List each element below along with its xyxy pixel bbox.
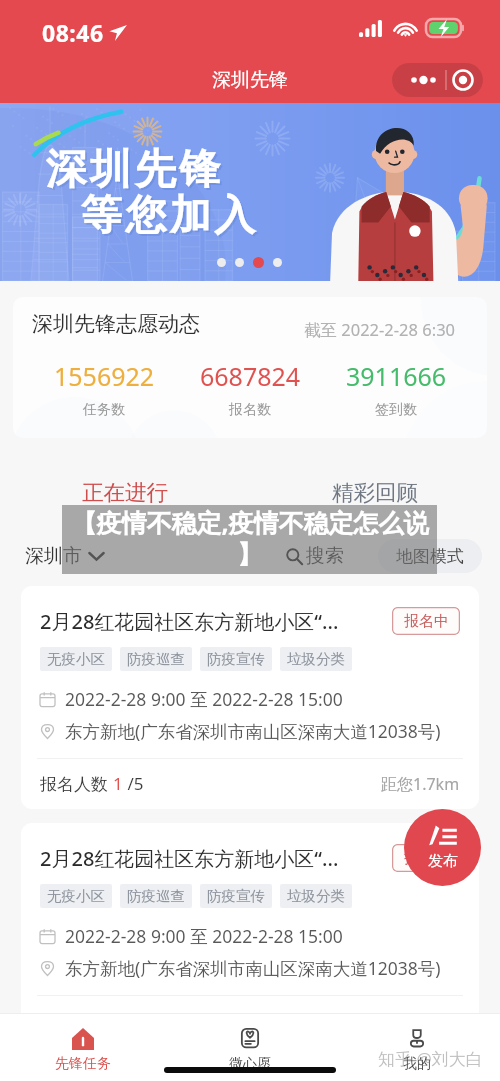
staticText: 等您加入: [79, 190, 257, 242]
staticText: 无疫小区: [47, 887, 105, 905]
staticText: 报名人数: [40, 1009, 113, 1032]
staticText: 知乎 @刘大白: [378, 1047, 483, 1070]
staticText: 2022-2-28 9:00 至 2022-2-28 15:00: [65, 924, 343, 948]
staticText: 深圳先锋: [212, 68, 288, 92]
button[interactable]: 正在进行: [0, 475, 250, 509]
staticText: 6687824: [200, 359, 301, 393]
staticText: 等您加入: [81, 192, 259, 244]
staticText: 防疫巡查: [127, 887, 185, 905]
staticText: 发布: [428, 852, 458, 871]
staticText: 】: [237, 539, 262, 570]
staticText: 深圳先锋: [44, 144, 222, 196]
staticText: 【疫情不稳定,疫情不稳定怎么说: [71, 505, 429, 539]
staticText: 深圳先锋: [46, 146, 224, 198]
staticText: 距您1.7km: [381, 773, 460, 795]
staticText: 报名人数: [40, 772, 113, 795]
staticText: 报名中: [404, 612, 449, 631]
staticText: 截至 2022-2-28 6:30: [304, 318, 456, 341]
button[interactable]: 先锋任务: [43, 1013, 123, 1081]
button[interactable]: 地图模式: [378, 539, 482, 573]
staticText: 东方新地(广东省深圳市南山区深南大道12038号): [65, 956, 441, 980]
button[interactable]: 精彩回顾: [250, 475, 500, 509]
staticText: 东方新地(广东省深圳市南山区深南大道12038号): [65, 719, 441, 743]
staticText: 垃圾分类: [287, 650, 345, 668]
staticText: 搜索: [306, 544, 344, 568]
staticText: 深圳先锋志愿动态: [32, 311, 200, 337]
staticText: 无疫小区: [47, 650, 105, 668]
button[interactable]: 深圳市: [25, 544, 105, 568]
staticText: 1: [113, 772, 123, 795]
staticText: 报名中: [404, 849, 449, 868]
staticText: 报名数: [229, 401, 271, 419]
staticText: 防疫宣传: [207, 887, 265, 905]
button[interactable]: 2月28红花园社区东方新地小区“...: [21, 823, 479, 1046]
staticText: 先锋任务: [55, 1055, 111, 1073]
button[interactable]: 发布: [404, 809, 481, 886]
staticText: 3911666: [346, 359, 447, 393]
staticText: 地图模式: [396, 546, 464, 567]
staticText: /5: [123, 772, 144, 795]
staticText: 签到数: [375, 401, 417, 419]
button[interactable]: More options: [392, 63, 483, 97]
button[interactable]: 深圳先锋志愿动态: [13, 297, 487, 438]
button[interactable]: 我的: [377, 1013, 457, 1081]
staticText: 我的: [403, 1055, 431, 1073]
button[interactable]: 搜索: [286, 544, 344, 568]
staticText: 2月28红花园社区东方新地小区“...: [40, 608, 384, 635]
staticText: 微心愿: [229, 1055, 271, 1073]
staticText: 任务数: [83, 401, 125, 419]
button[interactable]: 微心愿: [210, 1013, 290, 1081]
staticText: 垃圾分类: [287, 887, 345, 905]
button[interactable]: 2月28红花园社区东方新地小区“...: [21, 586, 479, 809]
staticText: 精彩回顾: [332, 479, 418, 506]
staticText: 距您1.7km: [381, 1010, 460, 1032]
staticText: 1: [113, 1009, 123, 1032]
staticText: 08:46: [42, 17, 104, 48]
staticText: 1556922: [54, 359, 155, 393]
staticText: 2月28红花园社区东方新地小区“...: [40, 845, 384, 872]
staticText: 防疫宣传: [207, 650, 265, 668]
staticText: 深圳市: [25, 544, 82, 568]
staticText: 正在进行: [82, 479, 168, 506]
staticText: /5: [123, 1009, 144, 1032]
staticText: 防疫巡查: [127, 650, 185, 668]
staticText: 2022-2-28 9:00 至 2022-2-28 15:00: [65, 687, 343, 711]
